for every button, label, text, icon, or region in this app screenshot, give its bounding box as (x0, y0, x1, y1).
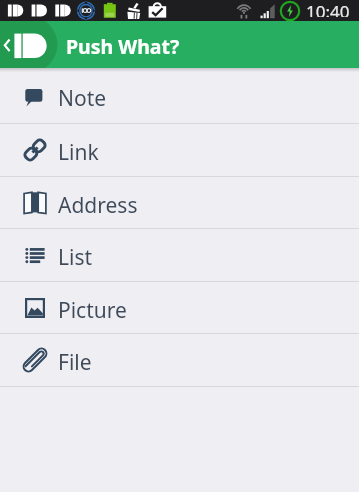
staticText: 10:40 (306, 0, 350, 17)
staticText: Link (58, 138, 99, 167)
button[interactable]: Navigate up (0, 21, 58, 68)
staticText: File (58, 348, 92, 377)
staticText: List (58, 243, 93, 272)
button[interactable]: Address (0, 177, 359, 228)
staticText: Picture (58, 296, 127, 325)
button[interactable]: Note (0, 68, 359, 123)
staticText: Push What? (66, 33, 180, 60)
button[interactable]: File (0, 334, 359, 386)
staticText: Note (58, 84, 107, 113)
staticText: Address (58, 191, 138, 220)
button[interactable]: Link (0, 124, 359, 176)
button[interactable]: Picture (0, 282, 359, 333)
button[interactable]: List (0, 229, 359, 281)
